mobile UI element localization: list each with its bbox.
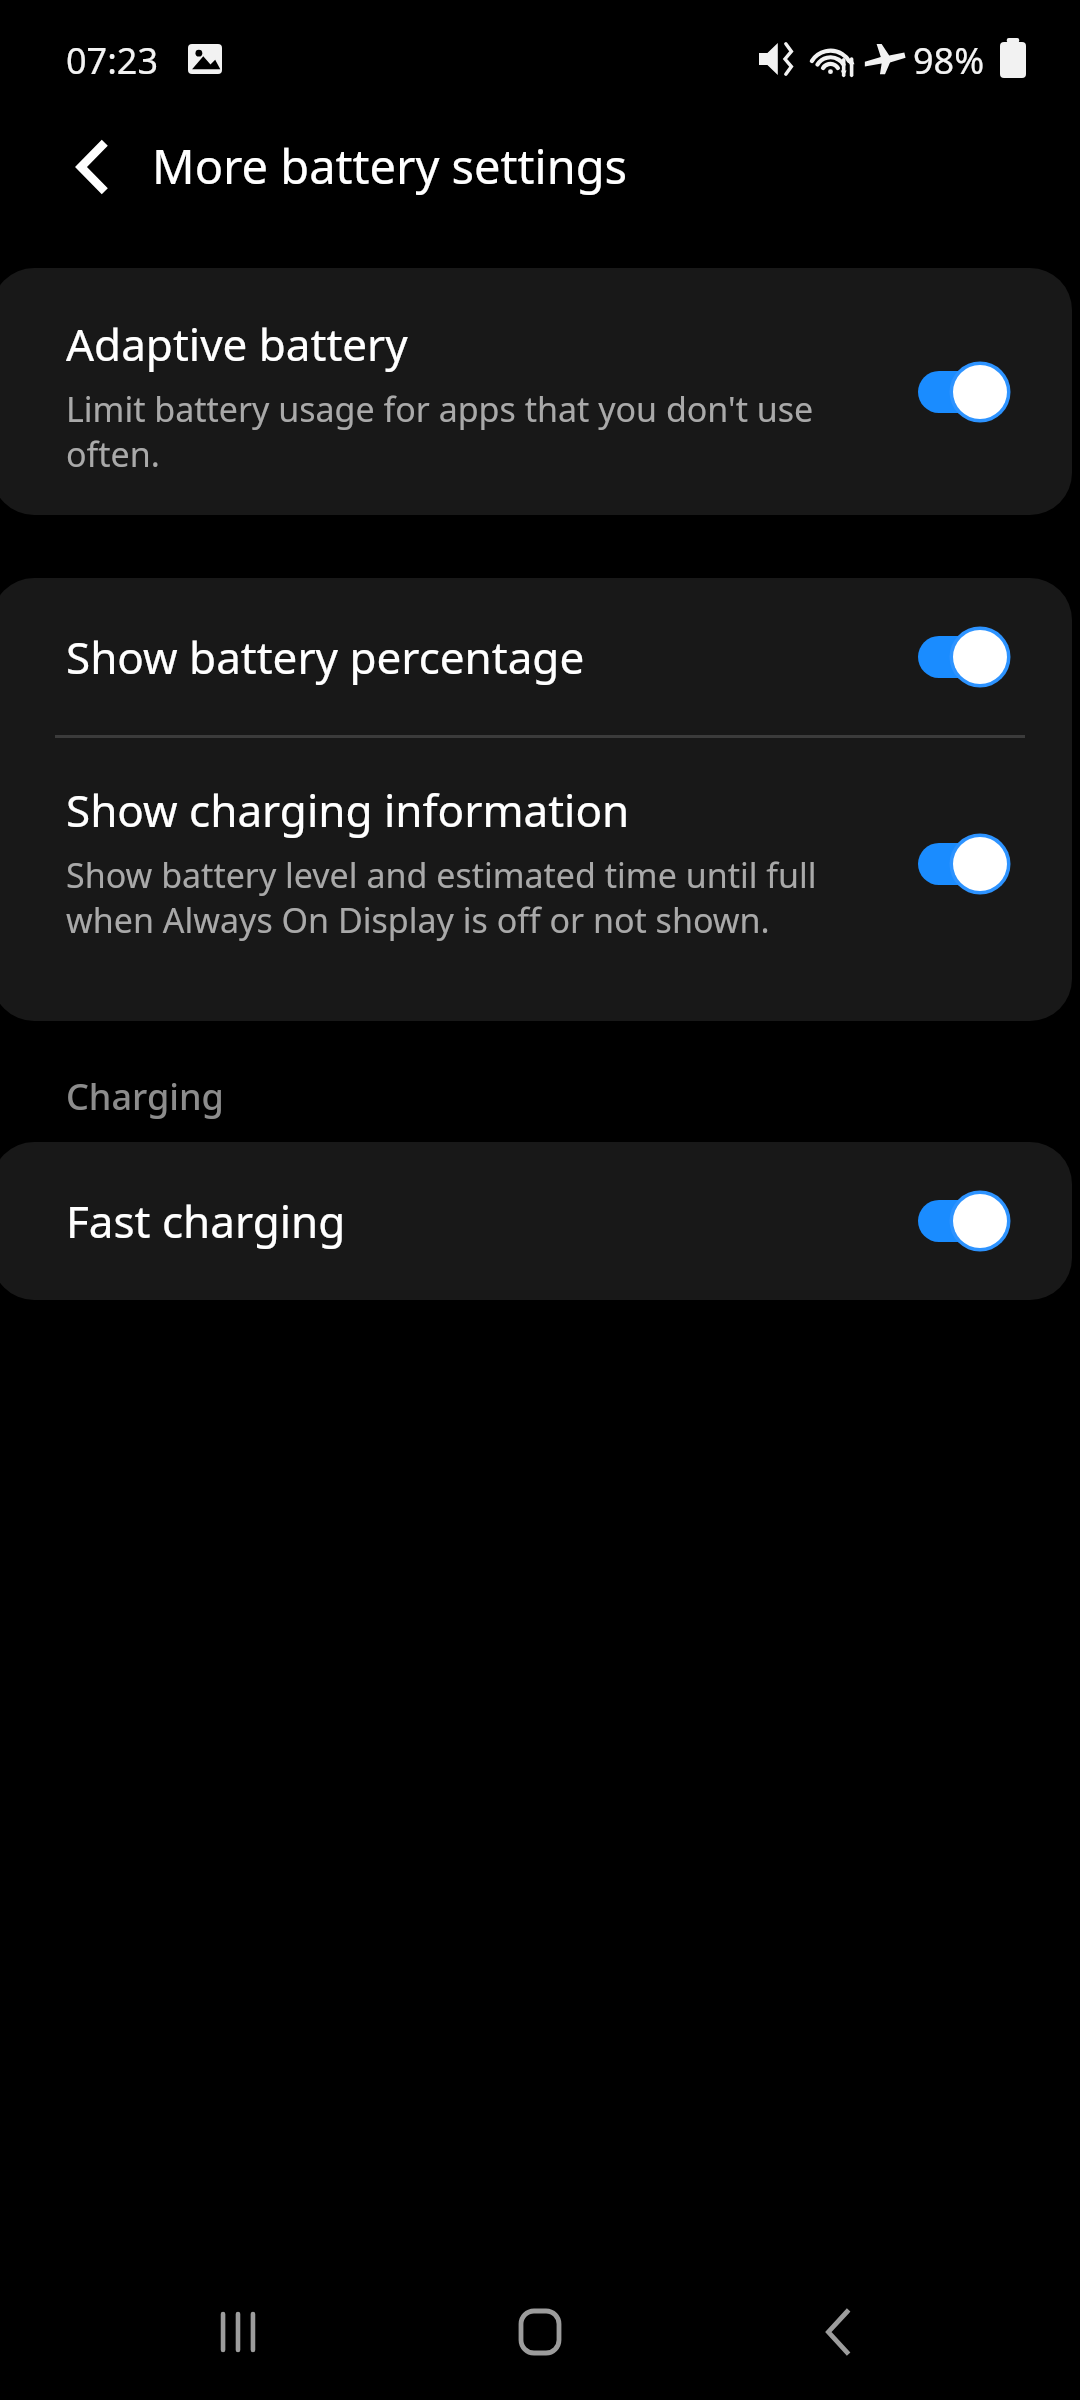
staticText: 07:23: [66, 36, 159, 85]
button[interactable]: Show battery percentage: [0, 578, 1072, 735]
button[interactable]: Toggle, on: [914, 834, 1010, 894]
button[interactable]: Recent apps: [178, 2272, 298, 2392]
button[interactable]: Navigate up: [50, 124, 136, 210]
staticText: 98%: [913, 36, 985, 85]
button[interactable]: Home: [480, 2272, 600, 2392]
staticText: Adaptive battery: [66, 314, 408, 374]
staticText: Show battery level and estimated time un…: [66, 852, 876, 942]
staticText: Show charging information: [66, 780, 630, 840]
button[interactable]: Toggle, on: [914, 627, 1010, 687]
staticText: Charging: [66, 1072, 224, 1121]
button[interactable]: Fast charging: [0, 1142, 1072, 1300]
staticText: Show battery percentage: [66, 627, 585, 687]
staticText: Limit battery usage for apps that you do…: [66, 386, 866, 476]
staticText: More battery settings: [152, 134, 628, 198]
staticText: Fast charging: [66, 1191, 346, 1251]
button[interactable]: Toggle, on: [914, 362, 1010, 422]
button[interactable]: Toggle, on: [914, 1191, 1010, 1251]
button[interactable]: Show charging information: [0, 738, 1072, 1021]
button[interactable]: Back: [778, 2272, 898, 2392]
